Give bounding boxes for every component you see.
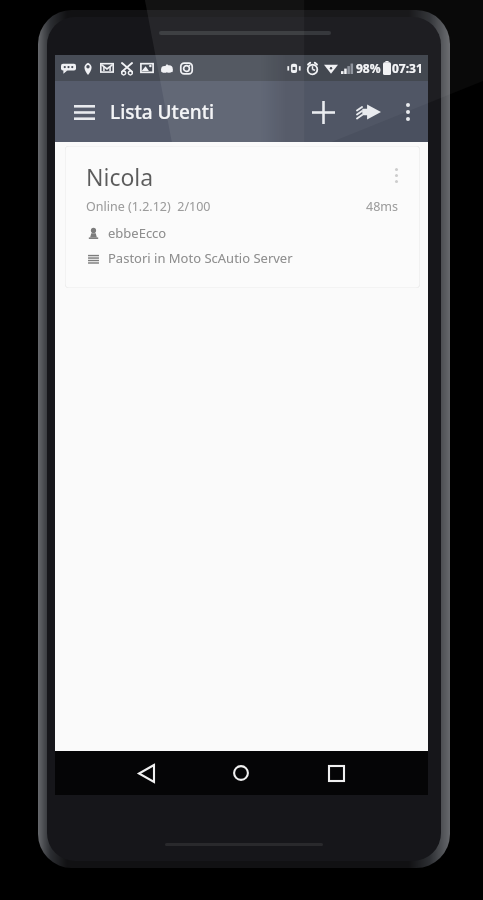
staticText: Lista Utenti [110,99,215,125]
button[interactable]: Open navigation drawer [63,91,105,133]
button[interactable]: More options [391,90,425,134]
button[interactable]: Back [126,753,166,793]
button[interactable]: Home [221,753,261,793]
button[interactable]: Recent apps [316,753,356,793]
staticText: ebbeEcco [108,224,167,242]
button[interactable]: User options [382,161,410,189]
button[interactable]: Refresh list [347,90,391,134]
staticText: Pastori in Moto ScAutio Server [108,249,293,267]
staticText: 48ms [366,198,398,215]
button[interactable]: Add user [301,90,345,134]
staticText: Nicola [86,161,154,192]
staticText: 98% [356,60,381,76]
staticText: 07:31 [392,60,423,76]
button[interactable]: Nicola [65,146,420,288]
staticText: Online (1.2.12) 2/100 [86,198,211,215]
